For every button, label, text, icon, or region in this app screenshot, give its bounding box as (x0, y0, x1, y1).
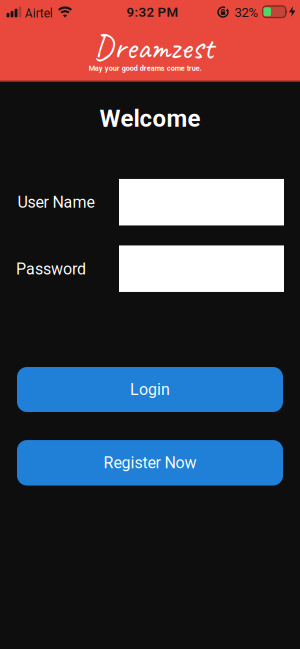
staticText: Welcome (99, 105, 200, 132)
staticText: Login (130, 380, 170, 399)
staticText: Password (16, 260, 86, 278)
staticText: Register Now (103, 454, 196, 472)
button[interactable]: Password (119, 245, 284, 292)
button[interactable]: Login (17, 367, 283, 412)
button[interactable]: Register Now (17, 440, 283, 486)
staticText: Airtel (25, 6, 53, 20)
staticText: May your good dreams come true. (89, 64, 202, 73)
staticText: 9:32 PM (126, 4, 178, 20)
staticText: User Name (17, 193, 94, 211)
staticText: Dreamzest (93, 27, 213, 69)
staticText: 32% (234, 5, 258, 20)
